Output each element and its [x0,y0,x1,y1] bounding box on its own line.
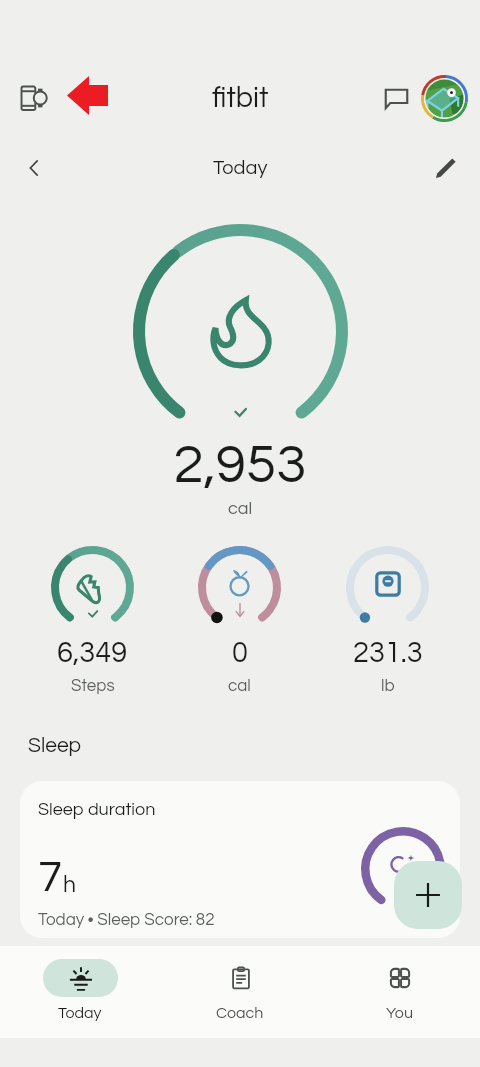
button[interactable]: Back [14,150,54,186]
button[interactable]: Profile [420,74,468,122]
button[interactable]: Devices [12,76,56,120]
staticText: 6,349 [57,638,128,668]
staticText: Today [58,1005,102,1021]
staticText: cal [0,499,480,518]
button[interactable]: Today [25,959,135,1021]
button[interactable]: 6,349 [18,546,167,695]
button[interactable]: Edit [426,150,466,186]
staticText: Sleep [28,735,82,757]
button[interactable]: You [344,959,454,1021]
button[interactable]: 231.3 [313,546,462,695]
button[interactable]: Coach [185,959,295,1021]
staticText: 2,953 [0,437,480,494]
staticText: Today • Sleep Score: 82 [38,911,215,929]
button[interactable]: Add [394,861,462,929]
button[interactable]: Sleep duration [20,781,460,938]
staticText: Today [213,158,268,179]
staticText: Coach [216,1005,264,1021]
staticText: Sleep duration [38,800,156,819]
staticText: 0 [232,638,248,668]
staticText: 7 [38,855,63,900]
button[interactable]: 0 [165,546,314,695]
staticText: lb [381,677,395,695]
staticText: 231.3 [353,638,423,668]
staticText: You [386,1005,413,1021]
button[interactable]: Messages [374,76,418,120]
staticText: fitbit [212,83,269,113]
staticText: h [63,873,77,897]
staticText: cal [228,677,251,695]
staticText: Steps [71,677,115,695]
